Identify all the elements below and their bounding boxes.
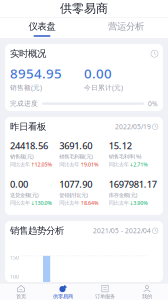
button[interactable]: 首页 <box>0 285 42 300</box>
staticText: 同比去年 <box>10 161 30 168</box>
staticText: 同比去年 <box>109 161 129 168</box>
staticText: 销售额(元) <box>10 83 42 92</box>
staticText: ↓3.90% <box>129 199 148 207</box>
button[interactable]: 2022/05/19 <box>115 122 158 131</box>
staticText: 2021/05 - 2022/04 <box>93 226 151 235</box>
staticText: 实时概况 <box>10 48 46 59</box>
staticText: 首页 <box>16 293 26 300</box>
button[interactable]: 营运分析 <box>84 17 168 38</box>
staticText: 8954.95 <box>10 64 62 82</box>
staticText: 销售毛利额(元) <box>59 153 93 160</box>
staticText: 1697981.17 <box>109 178 157 190</box>
staticText: 3691.60 <box>59 139 92 152</box>
staticText: ↑8.64% <box>80 199 99 207</box>
staticText: 促销折扣(元) <box>59 191 88 198</box>
staticText: ↓2.71% <box>129 161 148 168</box>
button[interactable]: 我的 <box>126 285 168 300</box>
staticText: 0.00 <box>10 178 28 190</box>
staticText: 销售毛利率(%) <box>109 153 142 160</box>
staticText: 150 <box>10 254 19 261</box>
staticText: 昨日看板 <box>10 121 46 132</box>
staticText: 100 <box>10 273 19 280</box>
staticText: 完成进度 <box>10 99 38 108</box>
button[interactable]: 2021/05 - 2022/04 <box>93 226 158 235</box>
staticText: 库存金额(元) <box>109 191 138 198</box>
staticText: 0% <box>148 99 158 108</box>
staticText: 我的 <box>142 293 152 300</box>
staticText: 同比去年 <box>59 161 79 168</box>
staticText: 同比去年 <box>59 200 79 206</box>
staticText: 15.12 <box>109 139 132 152</box>
staticText: 今日累计(元) <box>84 83 123 92</box>
staticText: 供零易商 <box>60 1 108 16</box>
staticText: ↓130.0% <box>31 199 53 207</box>
staticText: 1077.90 <box>59 178 92 190</box>
staticText: 供零易商 <box>53 293 73 300</box>
button[interactable]: 实时概况说明 <box>151 50 158 57</box>
staticText: 2022/05/19 <box>115 122 151 131</box>
staticText: 销售趋势分析 <box>10 225 64 236</box>
button[interactable]: 仪表盘 <box>0 17 84 38</box>
staticText: 24418.56 <box>10 139 48 152</box>
staticText: 销售额(元) <box>10 153 34 160</box>
staticText: ↑9.01% <box>80 161 99 168</box>
staticText: 营运分析 <box>108 21 144 32</box>
staticText: 仪表盘 <box>28 21 55 32</box>
button[interactable]: 订单服务 <box>84 285 126 300</box>
staticText: 订单服务 <box>95 293 115 300</box>
staticText: 同比去年 <box>109 200 129 206</box>
staticText: ↑12.05% <box>31 161 53 168</box>
staticText: 同比去年 <box>10 200 30 206</box>
button[interactable]: 供零易商 <box>42 285 84 300</box>
staticText: 送货金额(元) <box>10 191 39 198</box>
staticText: 0.00 <box>84 64 112 82</box>
